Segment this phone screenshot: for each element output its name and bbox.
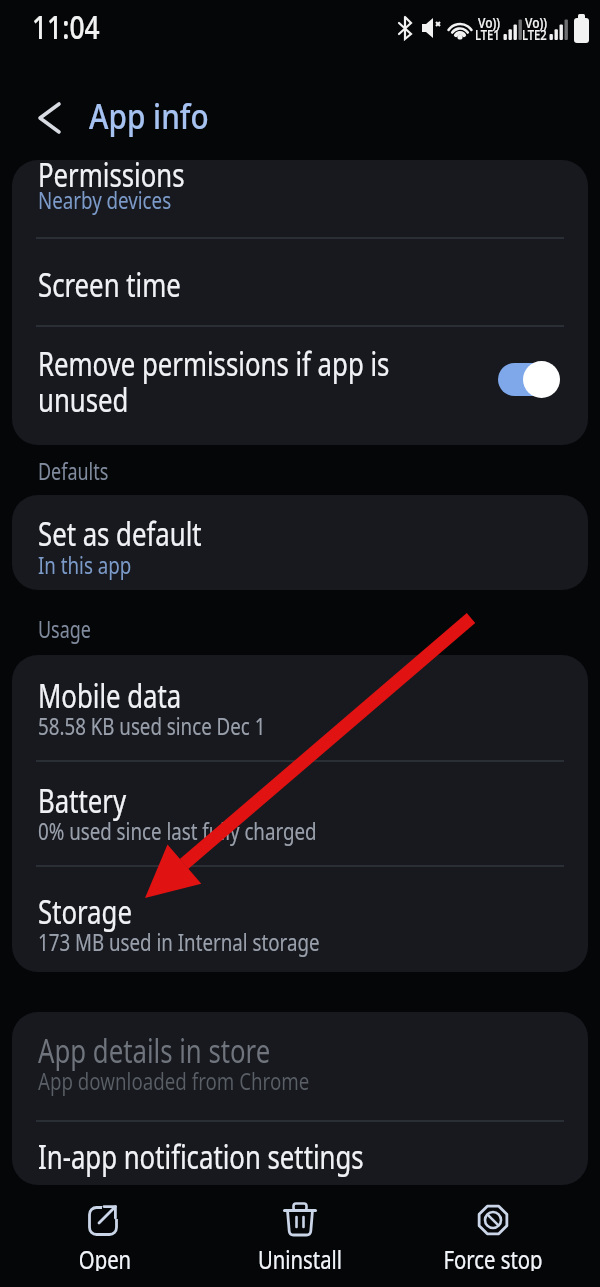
staticText: Vo))	[478, 12, 500, 32]
button[interactable]: Storage	[12, 866, 588, 972]
staticText: LTE1	[475, 25, 500, 44]
staticText: In this app	[38, 548, 132, 581]
button[interactable]: Battery	[12, 761, 588, 865]
button[interactable]: Remove permissions if app is	[12, 326, 588, 445]
button[interactable]: In-app notification settings	[12, 1121, 588, 1185]
staticText: Usage	[38, 613, 91, 644]
staticText: unused	[38, 377, 128, 422]
staticText: 58.58 KB used since Dec 1	[38, 709, 266, 742]
staticText: App downloaded from Chrome	[38, 1064, 309, 1097]
staticText: Open	[43, 1241, 167, 1271]
staticText: In-app notification settings	[38, 1134, 364, 1179]
button[interactable]: Open	[25, 1192, 185, 1287]
staticText: Vo))	[525, 12, 547, 32]
staticText: Remove permissions if app is	[38, 341, 390, 386]
staticText: Screen time	[38, 262, 181, 307]
staticText: Uninstall	[238, 1241, 362, 1271]
staticText: 0% used since last fully charged	[38, 814, 317, 847]
staticText: Set as default	[38, 511, 202, 556]
staticText: LTE2	[522, 25, 547, 44]
staticText: 173 MB used in Internal storage	[38, 925, 320, 958]
staticText: Battery	[38, 778, 126, 823]
staticText: App info	[89, 92, 209, 140]
staticText: Mobile data	[38, 673, 181, 718]
button[interactable]	[28, 94, 76, 142]
staticText: Storage	[38, 889, 132, 934]
button[interactable]: Set as default	[12, 495, 588, 590]
staticText: Force stop	[431, 1241, 555, 1271]
button[interactable]: Force stop	[413, 1192, 573, 1287]
staticText: App details in store	[38, 1028, 270, 1073]
button[interactable]: Uninstall	[220, 1192, 380, 1287]
button[interactable]: Screen time	[12, 238, 588, 325]
button[interactable]	[12, 160, 588, 236]
staticText: Permissions	[38, 160, 185, 197]
staticText: 11:04	[32, 4, 100, 49]
button[interactable]: Mobile data	[12, 655, 588, 760]
staticText: Defaults	[38, 455, 109, 486]
staticText: Nearby devices	[38, 183, 171, 216]
